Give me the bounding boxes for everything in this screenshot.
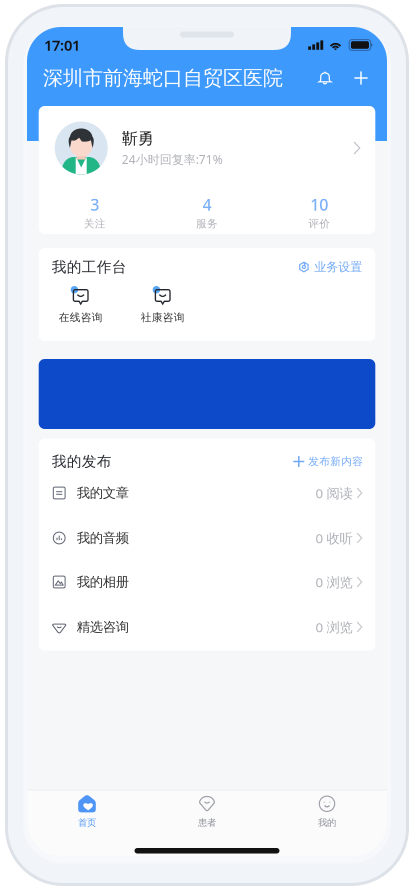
button[interactable]: Add: [345, 62, 377, 94]
staticText: 深圳市前海蛇口自贸区医院: [43, 66, 283, 90]
staticText: 社康咨询: [141, 311, 185, 324]
staticText: 0 阅读: [316, 484, 353, 502]
button[interactable]: 患者: [147, 788, 267, 834]
button[interactable]: 发布新内容: [293, 450, 363, 472]
staticText: 业务设置: [314, 260, 362, 274]
staticText: 0 收听: [316, 529, 353, 547]
staticText: 0 浏览: [316, 573, 353, 591]
button[interactable]: 3: [39, 190, 151, 234]
staticText: 3: [90, 194, 99, 215]
button[interactable]: 社康咨询: [122, 286, 204, 324]
staticText: 精选咨询: [77, 619, 129, 635]
staticText: 关注: [84, 217, 106, 230]
staticText: 4: [202, 194, 211, 215]
staticText: 我的音频: [77, 530, 129, 546]
button[interactable]: Notifications: [309, 62, 341, 94]
staticText: 24小时回复率:71%: [122, 151, 223, 167]
staticText: 服务: [196, 217, 218, 230]
staticText: 我的文章: [77, 485, 129, 501]
staticText: 发布新内容: [308, 455, 363, 468]
button[interactable]: 我的音频: [52, 515, 362, 560]
staticText: 我的相册: [77, 574, 129, 590]
staticText: 17:01: [44, 35, 80, 55]
staticText: 我的发布: [52, 452, 112, 470]
button[interactable]: 我的文章: [52, 470, 362, 515]
staticText: 评价: [308, 217, 330, 230]
button[interactable]: 靳勇: [39, 106, 375, 190]
staticText: 患者: [198, 817, 216, 828]
staticText: 首页: [78, 817, 96, 828]
staticText: 在线咨询: [59, 311, 103, 324]
staticText: 我的工作台: [52, 258, 127, 276]
button[interactable]: 我的: [267, 788, 387, 834]
button[interactable]: 在线咨询: [40, 286, 122, 324]
button[interactable]: 10: [263, 190, 375, 234]
staticText: 0 浏览: [316, 618, 353, 636]
staticText: 靳勇: [122, 129, 154, 148]
button[interactable]: Promotion banner: [39, 359, 375, 429]
staticText: 10: [310, 194, 328, 215]
staticText: 我的: [318, 817, 336, 828]
button[interactable]: 首页: [27, 788, 147, 834]
button[interactable]: 业务设置: [298, 257, 362, 277]
button[interactable]: 我的相册: [52, 559, 362, 604]
button[interactable]: 精选咨询: [52, 604, 362, 649]
button[interactable]: 4: [151, 190, 263, 234]
